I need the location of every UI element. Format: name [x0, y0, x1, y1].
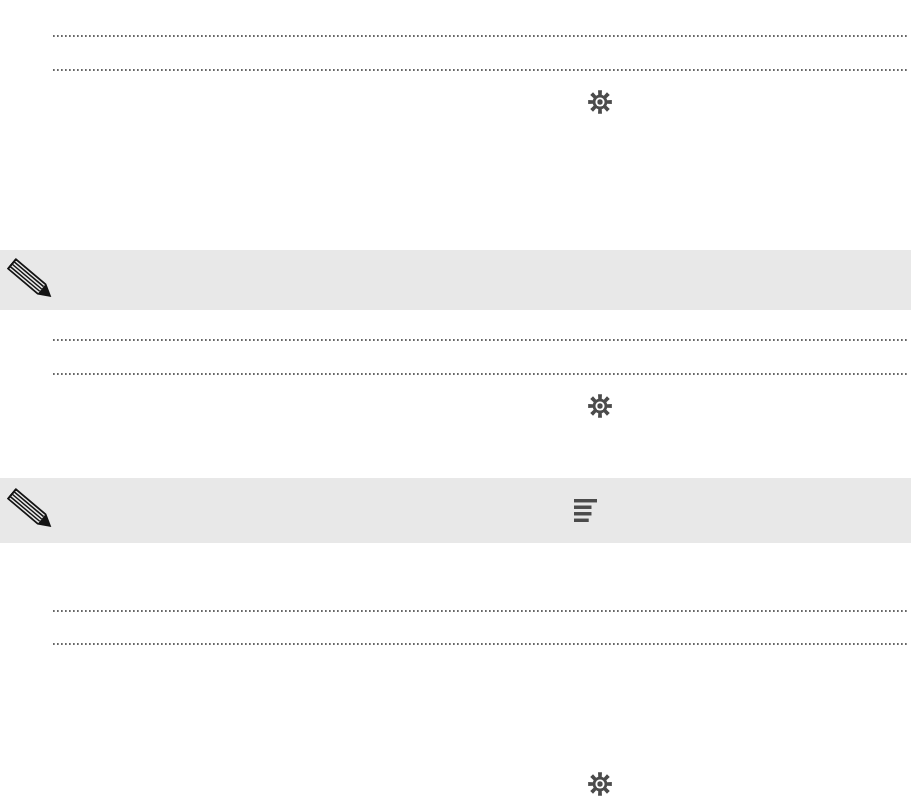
- button[interactable]: Settings: [587, 89, 613, 115]
- button[interactable]: Formatting options: [0, 478, 911, 543]
- button[interactable]: Settings: [587, 393, 613, 419]
- button[interactable]: Formatting options: [574, 499, 597, 522]
- button[interactable]: [0, 250, 911, 310]
- button[interactable]: Settings: [587, 771, 613, 797]
